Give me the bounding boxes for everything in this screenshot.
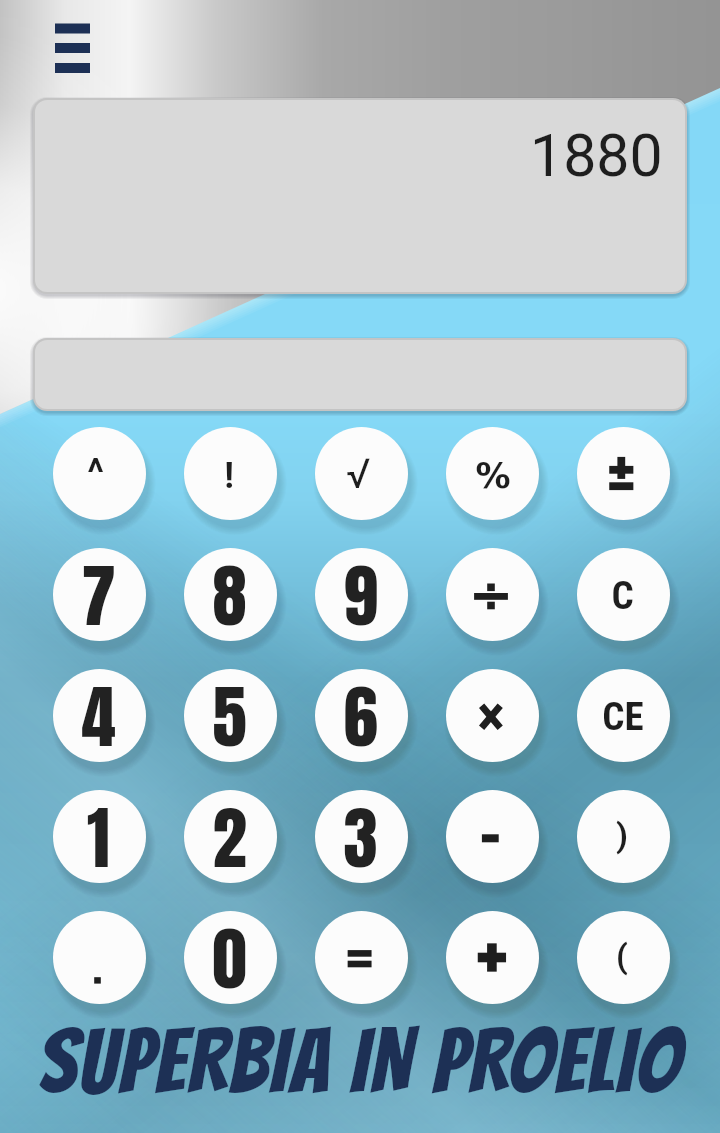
button[interactable]: Minus — [446, 790, 539, 883]
staticText: 3 — [343, 790, 378, 879]
staticText: ! — [224, 455, 234, 497]
staticText: 2 — [212, 790, 247, 879]
button[interactable]: ! — [184, 427, 277, 520]
staticText: C — [611, 573, 634, 619]
staticText: 7 — [81, 548, 116, 637]
button[interactable]: Plus minus — [577, 427, 670, 520]
button[interactable]: Decimal point — [53, 911, 146, 1004]
button[interactable]: 0 — [184, 911, 277, 1004]
button[interactable]: Divide — [446, 548, 539, 641]
button[interactable]: CE — [577, 669, 670, 762]
staticText: % — [475, 456, 511, 497]
staticText: 0 — [212, 911, 247, 1000]
button[interactable]: Menu — [46, 12, 102, 68]
button[interactable]: % — [446, 427, 539, 520]
staticText: 6 — [343, 669, 378, 758]
button[interactable]: ( — [577, 911, 670, 1004]
button[interactable]: 2 — [184, 790, 277, 883]
button[interactable]: 7 — [53, 548, 146, 641]
button[interactable]: 8 — [184, 548, 277, 641]
staticText: ^ — [87, 451, 104, 496]
button[interactable]: 1 — [53, 790, 146, 883]
staticText: 9 — [343, 548, 378, 637]
button[interactable]: Plus — [446, 911, 539, 1004]
button[interactable]: 9 — [315, 548, 408, 641]
staticText: 5 — [212, 669, 247, 758]
staticText: CE — [602, 694, 644, 740]
staticText: √ — [346, 450, 371, 498]
button[interactable]: ^ — [53, 427, 146, 520]
staticText: 1 — [87, 790, 110, 879]
staticText: 8 — [212, 548, 247, 637]
staticText: 4 — [81, 669, 116, 758]
staticText: ) — [616, 815, 628, 855]
button[interactable]: 5 — [184, 669, 277, 762]
button[interactable]: 6 — [315, 669, 408, 762]
button[interactable]: C — [577, 548, 670, 641]
button[interactable]: 3 — [315, 790, 408, 883]
button[interactable]: Multiply — [446, 669, 539, 762]
button[interactable]: 4 — [53, 669, 146, 762]
staticText: 1880 — [530, 121, 663, 190]
button[interactable]: Equals — [315, 911, 408, 1004]
button[interactable]: ) — [577, 790, 670, 883]
button[interactable]: Square root — [315, 427, 408, 520]
staticText: SUPERBIA IN PROELIO — [0, 1014, 720, 1110]
staticText: ( — [616, 936, 628, 976]
